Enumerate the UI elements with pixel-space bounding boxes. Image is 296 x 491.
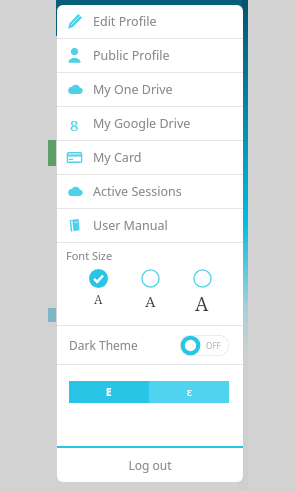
button[interactable]: Font size 15: [127, 269, 173, 311]
staticText: A: [145, 291, 156, 311]
staticText: Edit Profile: [93, 13, 157, 30]
staticText: A: [195, 291, 209, 317]
button[interactable]: Log out: [57, 448, 243, 482]
button[interactable]: Edit Profile: [57, 5, 243, 39]
staticText: ε: [187, 385, 192, 399]
staticText: 8: [70, 115, 79, 132]
button[interactable]: My Card: [57, 141, 243, 175]
staticText: Log out: [128, 457, 172, 473]
staticText: Font Size: [66, 248, 113, 263]
button[interactable]: E: [69, 381, 149, 403]
button[interactable]: Dark Theme: [57, 326, 243, 364]
button[interactable]: 8: [57, 107, 243, 141]
staticText: User Manual: [93, 217, 168, 234]
button[interactable]: My One Drive: [57, 73, 243, 107]
staticText: My One Drive: [93, 81, 173, 98]
staticText: Active Sessions: [93, 183, 182, 200]
staticText: OFF: [206, 340, 221, 351]
staticText: My Google Drive: [93, 115, 191, 132]
button[interactable]: Font size 12: [75, 269, 121, 307]
button[interactable]: User Manual: [57, 209, 243, 243]
button[interactable]: Public Profile: [57, 39, 243, 73]
staticText: E: [106, 385, 112, 399]
other: Dark Theme off: [180, 335, 229, 356]
staticText: A: [94, 291, 103, 307]
button[interactable]: Active Sessions: [57, 175, 243, 209]
staticText: My Card: [93, 149, 142, 166]
staticText: Public Profile: [93, 47, 170, 64]
staticText: Dark Theme: [69, 337, 138, 353]
button[interactable]: ε: [149, 381, 229, 403]
button[interactable]: Font size 19: [179, 269, 225, 317]
